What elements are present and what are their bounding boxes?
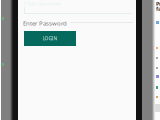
staticText: Enter Password [23, 19, 67, 27]
button[interactable]: LOGIN [24, 31, 76, 46]
staticText: Enter Username [24, 1, 61, 7]
staticText: fa [156, 5, 160, 12]
staticText: LOGIN [42, 35, 57, 42]
staticText: Pr [156, 0, 160, 7]
